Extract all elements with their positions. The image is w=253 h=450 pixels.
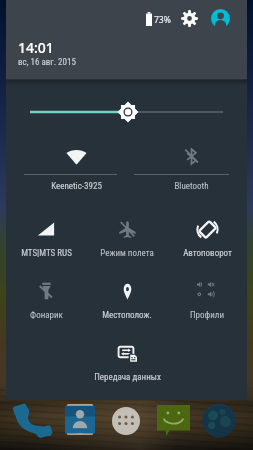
staticText: 73%	[154, 14, 171, 26]
button[interactable]	[6, 207, 86, 255]
staticText: вс, 16 авг. 2015	[18, 57, 76, 68]
button[interactable]	[87, 269, 167, 317]
button[interactable]: Brightness	[6, 92, 247, 132]
button[interactable]	[167, 269, 247, 317]
button[interactable]	[167, 207, 247, 255]
button[interactable]	[6, 269, 86, 317]
staticText: Местополож.	[102, 310, 152, 321]
button[interactable]: Messages	[157, 405, 190, 436]
button[interactable]: Browser	[202, 404, 236, 437]
staticText: Профили	[190, 310, 224, 321]
button[interactable]: Contacts	[65, 404, 95, 435]
staticText: Фонарик	[30, 310, 63, 321]
staticText: Bluetooth	[174, 181, 209, 192]
staticText: 14:01	[18, 38, 54, 57]
button[interactable]	[36, 134, 116, 182]
staticText: Передача данных	[94, 372, 161, 383]
button[interactable]: User profile	[211, 9, 230, 28]
button[interactable]	[87, 331, 167, 379]
button[interactable]: Phone	[15, 405, 52, 437]
staticText: Режим полета	[100, 248, 154, 259]
staticText: MTS|MTS RUS	[21, 248, 72, 259]
button[interactable]	[87, 207, 167, 255]
button[interactable]	[151, 134, 231, 182]
staticText: Keenetic-3925	[51, 181, 102, 192]
button[interactable]: Apps	[112, 407, 140, 435]
staticText: Автоповорот	[183, 248, 232, 259]
button[interactable]: Settings	[181, 10, 198, 27]
